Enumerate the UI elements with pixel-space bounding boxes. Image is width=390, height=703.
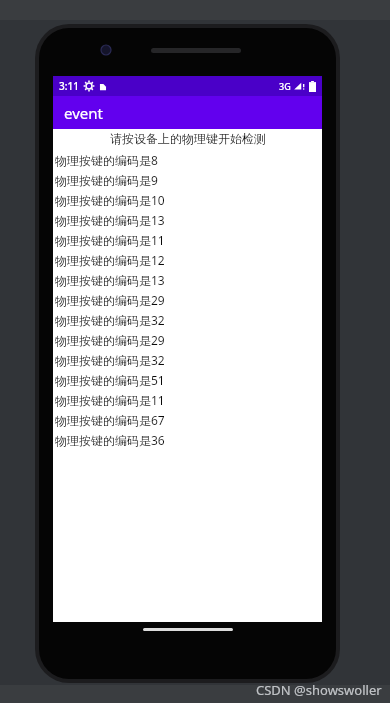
staticText: 物理按键的编码是13 bbox=[55, 212, 165, 228]
staticText: 物理按键的编码是12 bbox=[55, 252, 165, 268]
staticText: 物理按键的编码是29 bbox=[55, 332, 165, 348]
staticText: 物理按键的编码是51 bbox=[55, 372, 165, 388]
staticText: event bbox=[64, 103, 103, 123]
staticText: 请按设备上的物理键开始检测 bbox=[110, 131, 266, 146]
staticText: 物理按键的编码是32 bbox=[55, 312, 165, 328]
staticText: 3:11 bbox=[59, 79, 79, 93]
staticText: 物理按键的编码是13 bbox=[55, 272, 165, 288]
staticText: 物理按键的编码是11 bbox=[55, 232, 165, 248]
staticText: 物理按键的编码是32 bbox=[55, 352, 165, 368]
staticText: 物理按键的编码是67 bbox=[55, 412, 165, 428]
button[interactable]: event bbox=[53, 96, 322, 129]
staticText: CSDN @showswoller bbox=[256, 681, 382, 699]
staticText: 物理按键的编码是36 bbox=[55, 432, 165, 448]
staticText: 物理按键的编码是11 bbox=[55, 392, 165, 408]
staticText: 3G bbox=[279, 80, 291, 92]
staticText: 物理按键的编码是9 bbox=[55, 172, 158, 188]
staticText: 物理按键的编码是8 bbox=[55, 152, 158, 168]
staticText: 物理按键的编码是10 bbox=[55, 192, 165, 208]
staticText: 物理按键的编码是29 bbox=[55, 292, 165, 308]
